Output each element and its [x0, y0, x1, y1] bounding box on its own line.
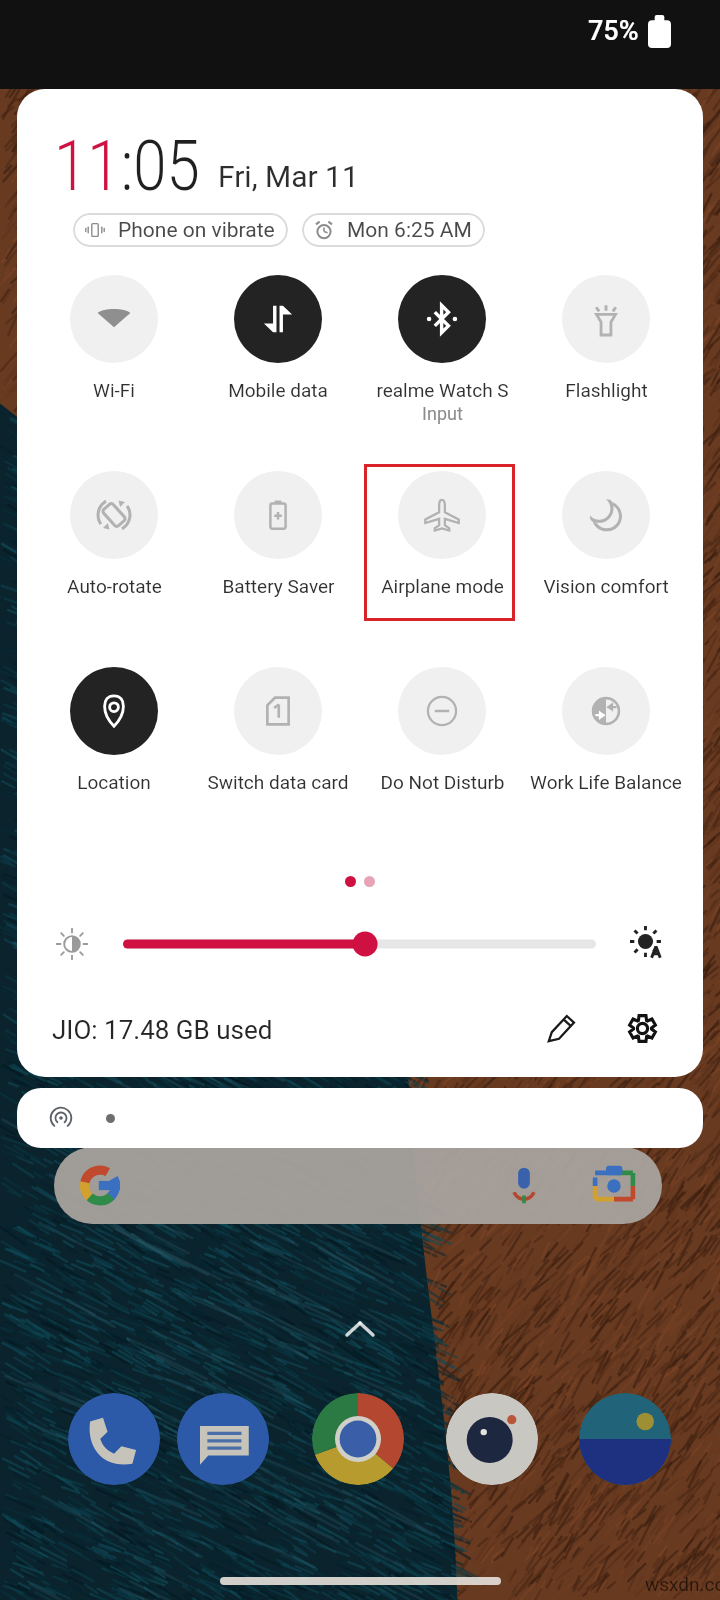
- button[interactable]: Do Not Disturb: [360, 667, 524, 793]
- staticText: Mon 6:25 AM: [347, 218, 472, 243]
- staticText: Airplane mode: [381, 575, 504, 597]
- staticText: realme Watch S: [376, 379, 509, 401]
- button[interactable]: Vision comfort: [524, 471, 688, 597]
- staticText: Work Life Balance: [530, 771, 682, 793]
- button[interactable]: Battery Saver: [196, 471, 360, 597]
- staticText: Battery Saver: [222, 575, 335, 597]
- staticText: Input: [422, 403, 463, 424]
- staticText: Location: [77, 771, 151, 793]
- button[interactable]: Auto brightness: [620, 916, 676, 972]
- button[interactable]: Auto-rotate: [32, 471, 196, 597]
- button[interactable]: Flashlight: [524, 275, 688, 401]
- button[interactable]: Location: [32, 667, 196, 793]
- staticText: Flashlight: [565, 379, 648, 401]
- staticText: wsxdn.com: [645, 1573, 720, 1595]
- staticText: Fri, Mar 11: [218, 159, 359, 194]
- button[interactable]: Wi-Fi: [32, 275, 196, 401]
- button[interactable]: Lower brightness: [44, 916, 100, 972]
- staticText: JIO: 17.48 GB used: [52, 1015, 273, 1045]
- button[interactable]: Media cast: [17, 1088, 703, 1148]
- staticText: Switch data card: [207, 771, 349, 793]
- staticText: Mobile data: [228, 379, 328, 401]
- staticText: Vision comfort: [543, 575, 669, 597]
- button[interactable]: Phone on vibrate: [73, 213, 288, 247]
- staticText: Wi-Fi: [93, 379, 135, 401]
- button[interactable]: MESSAGES: [177, 1393, 269, 1485]
- staticText: 75%: [588, 15, 639, 47]
- button[interactable]: realme Watch S: [360, 275, 524, 424]
- button[interactable]: Airplane mode: [360, 471, 524, 597]
- button[interactable]: Mobile data: [196, 275, 360, 401]
- button[interactable]: Settings: [613, 999, 671, 1057]
- staticText: Phone on vibrate: [118, 218, 275, 243]
- staticText: Do Not Disturb: [380, 771, 505, 793]
- button[interactable]: Work Life Balance: [524, 667, 688, 793]
- button[interactable]: Edit tiles: [533, 999, 591, 1057]
- button[interactable]: Mon 6:25 AM: [302, 213, 485, 247]
- button[interactable]: Switch data card: [196, 667, 360, 793]
- button[interactable]: PHONE: [68, 1393, 160, 1485]
- staticText: 11: [54, 125, 121, 207]
- button[interactable]: CHROME: [312, 1393, 404, 1485]
- button[interactable]: Search: [54, 1147, 662, 1224]
- staticText: :05: [121, 125, 200, 207]
- button[interactable]: [123, 930, 596, 958]
- button[interactable]: CAMERA: [446, 1393, 538, 1485]
- staticText: Auto-rotate: [67, 575, 162, 597]
- button[interactable]: PHOTOS: [579, 1393, 671, 1485]
